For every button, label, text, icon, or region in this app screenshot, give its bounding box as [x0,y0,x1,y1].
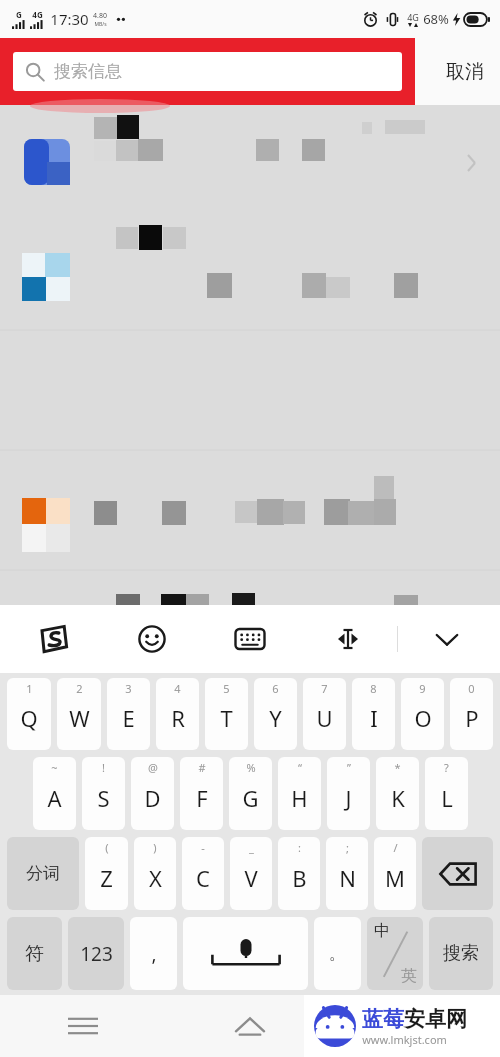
staticText: 4G [407,11,419,23]
button[interactable]: ( [85,837,128,910]
button[interactable]: 123 [68,917,124,990]
button[interactable]: # [180,757,223,830]
button[interactable]: Hide keyboard [398,605,496,673]
button[interactable]: ! [82,757,125,830]
button[interactable]: 分词 [7,837,79,910]
button[interactable]: % [229,757,272,830]
button[interactable]: 符 [7,917,62,990]
staticText: Z [100,863,113,893]
button[interactable]: 8 [352,678,395,750]
staticText: S [97,783,110,813]
staticText: 安卓网 [404,1006,467,1032]
button[interactable]: 中 [367,917,423,990]
button[interactable]: Sogou input method [4,605,103,673]
button[interactable]: @ [131,757,174,830]
staticText: V [244,863,258,893]
button[interactable]: 2 [57,678,101,750]
staticText: 。 [329,943,346,964]
staticText: 6 [272,681,279,696]
staticText: 0 [468,681,475,696]
staticText: W [69,703,90,733]
staticText: 7 [321,681,328,696]
staticText: 中 [374,921,390,941]
button[interactable]: _ [230,837,272,910]
button[interactable]: 9 [401,678,444,750]
staticText: D [144,783,161,813]
button[interactable]: 0 [450,678,493,750]
staticText: _ [249,840,254,855]
staticText: 英 [401,966,417,986]
button[interactable]: 搜索信息 [13,52,402,91]
staticText: ; [346,840,349,855]
button[interactable]: Recent apps [0,995,166,1057]
button[interactable]: Home [166,995,333,1057]
button[interactable]: 7 [303,678,346,750]
staticText: T [220,703,233,733]
button[interactable]: 搜索 [429,917,493,990]
button[interactable]: ; [326,837,368,910]
staticText: X [149,863,162,893]
staticText: ~ [51,760,58,775]
staticText: 123 [80,941,113,967]
staticText: C [196,863,210,893]
staticText: - [201,840,205,855]
button[interactable]: , [130,917,177,990]
staticText: 搜索信息 [54,61,122,82]
button[interactable]: / [374,837,416,910]
button[interactable]: ) [134,837,176,910]
staticText: 搜索 [443,942,479,965]
staticText: ” [347,760,351,775]
button[interactable]: 4 [156,678,199,750]
staticText: ( [105,840,109,855]
staticText: R [171,703,185,733]
staticText: P [465,703,479,733]
staticText: Q [20,703,38,733]
staticText: Y [269,703,282,733]
button[interactable]: : [278,837,320,910]
staticText: B [292,863,307,893]
button[interactable]: 取消 [446,38,484,105]
staticText: G [242,783,259,813]
staticText: I [370,703,378,733]
staticText: www.lmkjst.com [362,1032,447,1047]
button[interactable]: 3 [107,678,150,750]
button[interactable]: 5 [205,678,248,750]
button[interactable]: 。 [314,917,361,990]
button[interactable]: ? [425,757,468,830]
staticText: , [151,941,157,967]
staticText: “ [298,760,302,775]
button[interactable]: Emoji [103,605,201,673]
staticText: 4 [174,681,181,696]
button[interactable]: 6 [254,678,297,750]
button[interactable]: ~ [33,757,76,830]
button[interactable]: ” [327,757,370,830]
staticText: U [316,703,333,733]
staticText: * [394,760,401,775]
staticText: / [393,840,398,855]
staticText: ) [153,840,157,855]
staticText: @ [148,760,158,775]
button[interactable]: 1 [7,678,51,750]
staticText: 5 [223,681,230,696]
staticText: N [339,863,356,893]
staticText: F [196,783,208,813]
staticText: # [198,760,206,775]
button[interactable]: Keyboard layout [201,605,299,673]
staticText: 分词 [26,863,60,884]
button[interactable]: Space [183,917,308,990]
staticText: 9 [419,681,426,696]
staticText: L [441,783,453,813]
button[interactable]: Backspace [422,837,493,910]
staticText: MB/s [94,21,107,28]
button[interactable]: * [376,757,419,830]
button[interactable]: Move cursor [299,605,397,673]
staticText: ? [444,760,449,775]
staticText: 符 [25,942,44,966]
button[interactable]: “ [278,757,321,830]
staticText: 取消 [446,60,484,84]
staticText: 68% [423,10,449,28]
staticText: J [345,783,352,813]
staticText: E [122,703,135,733]
staticText: 2 [76,681,83,696]
button[interactable]: - [182,837,224,910]
